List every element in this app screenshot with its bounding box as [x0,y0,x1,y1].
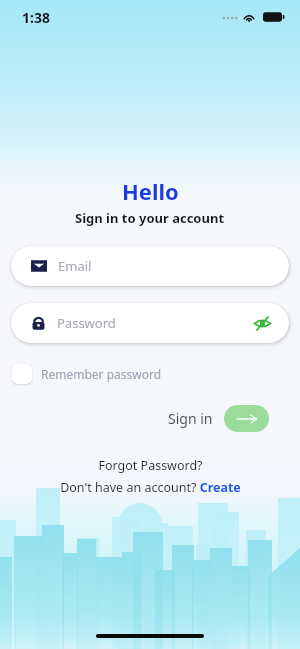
staticText: 1:38 [22,8,50,27]
button[interactable]: Remember password [12,364,168,384]
staticText: Sign in to your account [75,209,225,227]
button[interactable]: Email [11,246,289,286]
button[interactable]: Forgot Password? [98,457,203,474]
button[interactable]: Sign in [224,405,269,432]
staticText: Sign in [168,409,213,428]
staticText: Email [58,257,92,275]
staticText: Hello [122,176,179,206]
button[interactable]: Show password [251,312,273,334]
staticText: Remember password [41,366,162,382]
button[interactable]: Password [11,303,289,343]
staticText: Password [57,314,251,332]
button[interactable]: Don't have an account? Create [60,479,241,496]
